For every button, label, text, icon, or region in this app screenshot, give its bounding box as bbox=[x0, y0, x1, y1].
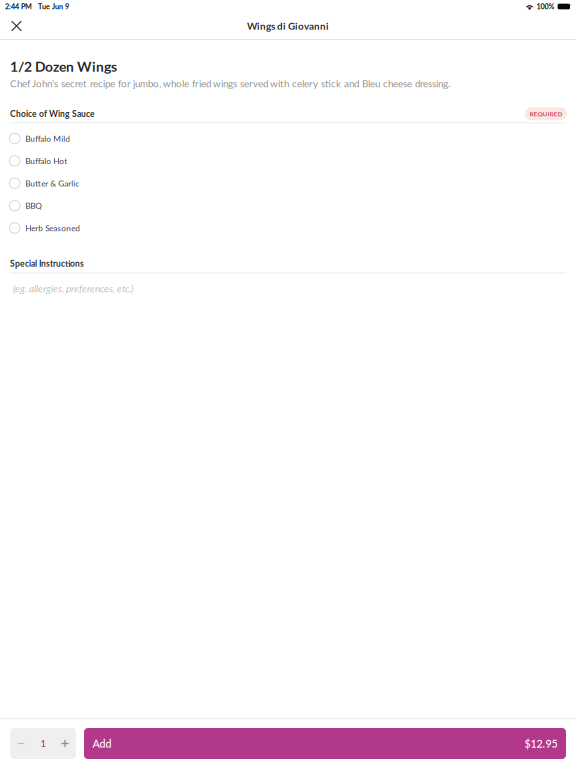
button[interactable]: Close bbox=[0, 13, 33, 39]
staticText: Buffalo Hot bbox=[25, 156, 67, 166]
staticText: REQUIRED bbox=[529, 110, 562, 118]
button[interactable]: Decrease quantity bbox=[10, 728, 32, 759]
staticText: Tue Jun 9 bbox=[38, 2, 69, 11]
staticText: Herb Seasoned bbox=[25, 223, 80, 233]
staticText: Buffalo Mild bbox=[25, 133, 70, 143]
staticText: 2:44 PM bbox=[5, 2, 32, 11]
staticText: Choice of Wing Sauce bbox=[10, 109, 95, 119]
button[interactable]: Buffalo Mild bbox=[0, 127, 576, 150]
staticText: Wings di Giovanni bbox=[247, 20, 329, 32]
staticText: 1 bbox=[40, 738, 45, 749]
staticText: 100% bbox=[537, 2, 555, 11]
button[interactable]: Butter & Garlic bbox=[0, 172, 576, 194]
button[interactable]: Herb Seasoned bbox=[0, 217, 576, 239]
staticText: (eg. allergies, preferences, etc.) bbox=[13, 282, 134, 294]
staticText: Special Instructions bbox=[10, 258, 84, 268]
staticText: $12.95 bbox=[525, 737, 558, 750]
staticText: Butter & Garlic bbox=[25, 178, 79, 188]
staticText: Add bbox=[92, 737, 111, 750]
button[interactable]: Buffalo Hot bbox=[0, 150, 576, 172]
button[interactable]: BBQ bbox=[0, 194, 576, 217]
staticText: BBQ bbox=[25, 201, 42, 211]
button[interactable]: Add bbox=[84, 728, 566, 759]
staticText: Chef John's secret recipe for jumbo, who… bbox=[10, 78, 450, 89]
staticText: 1/2 Dozen Wings bbox=[10, 58, 117, 75]
button[interactable]: Increase quantity bbox=[54, 728, 76, 759]
